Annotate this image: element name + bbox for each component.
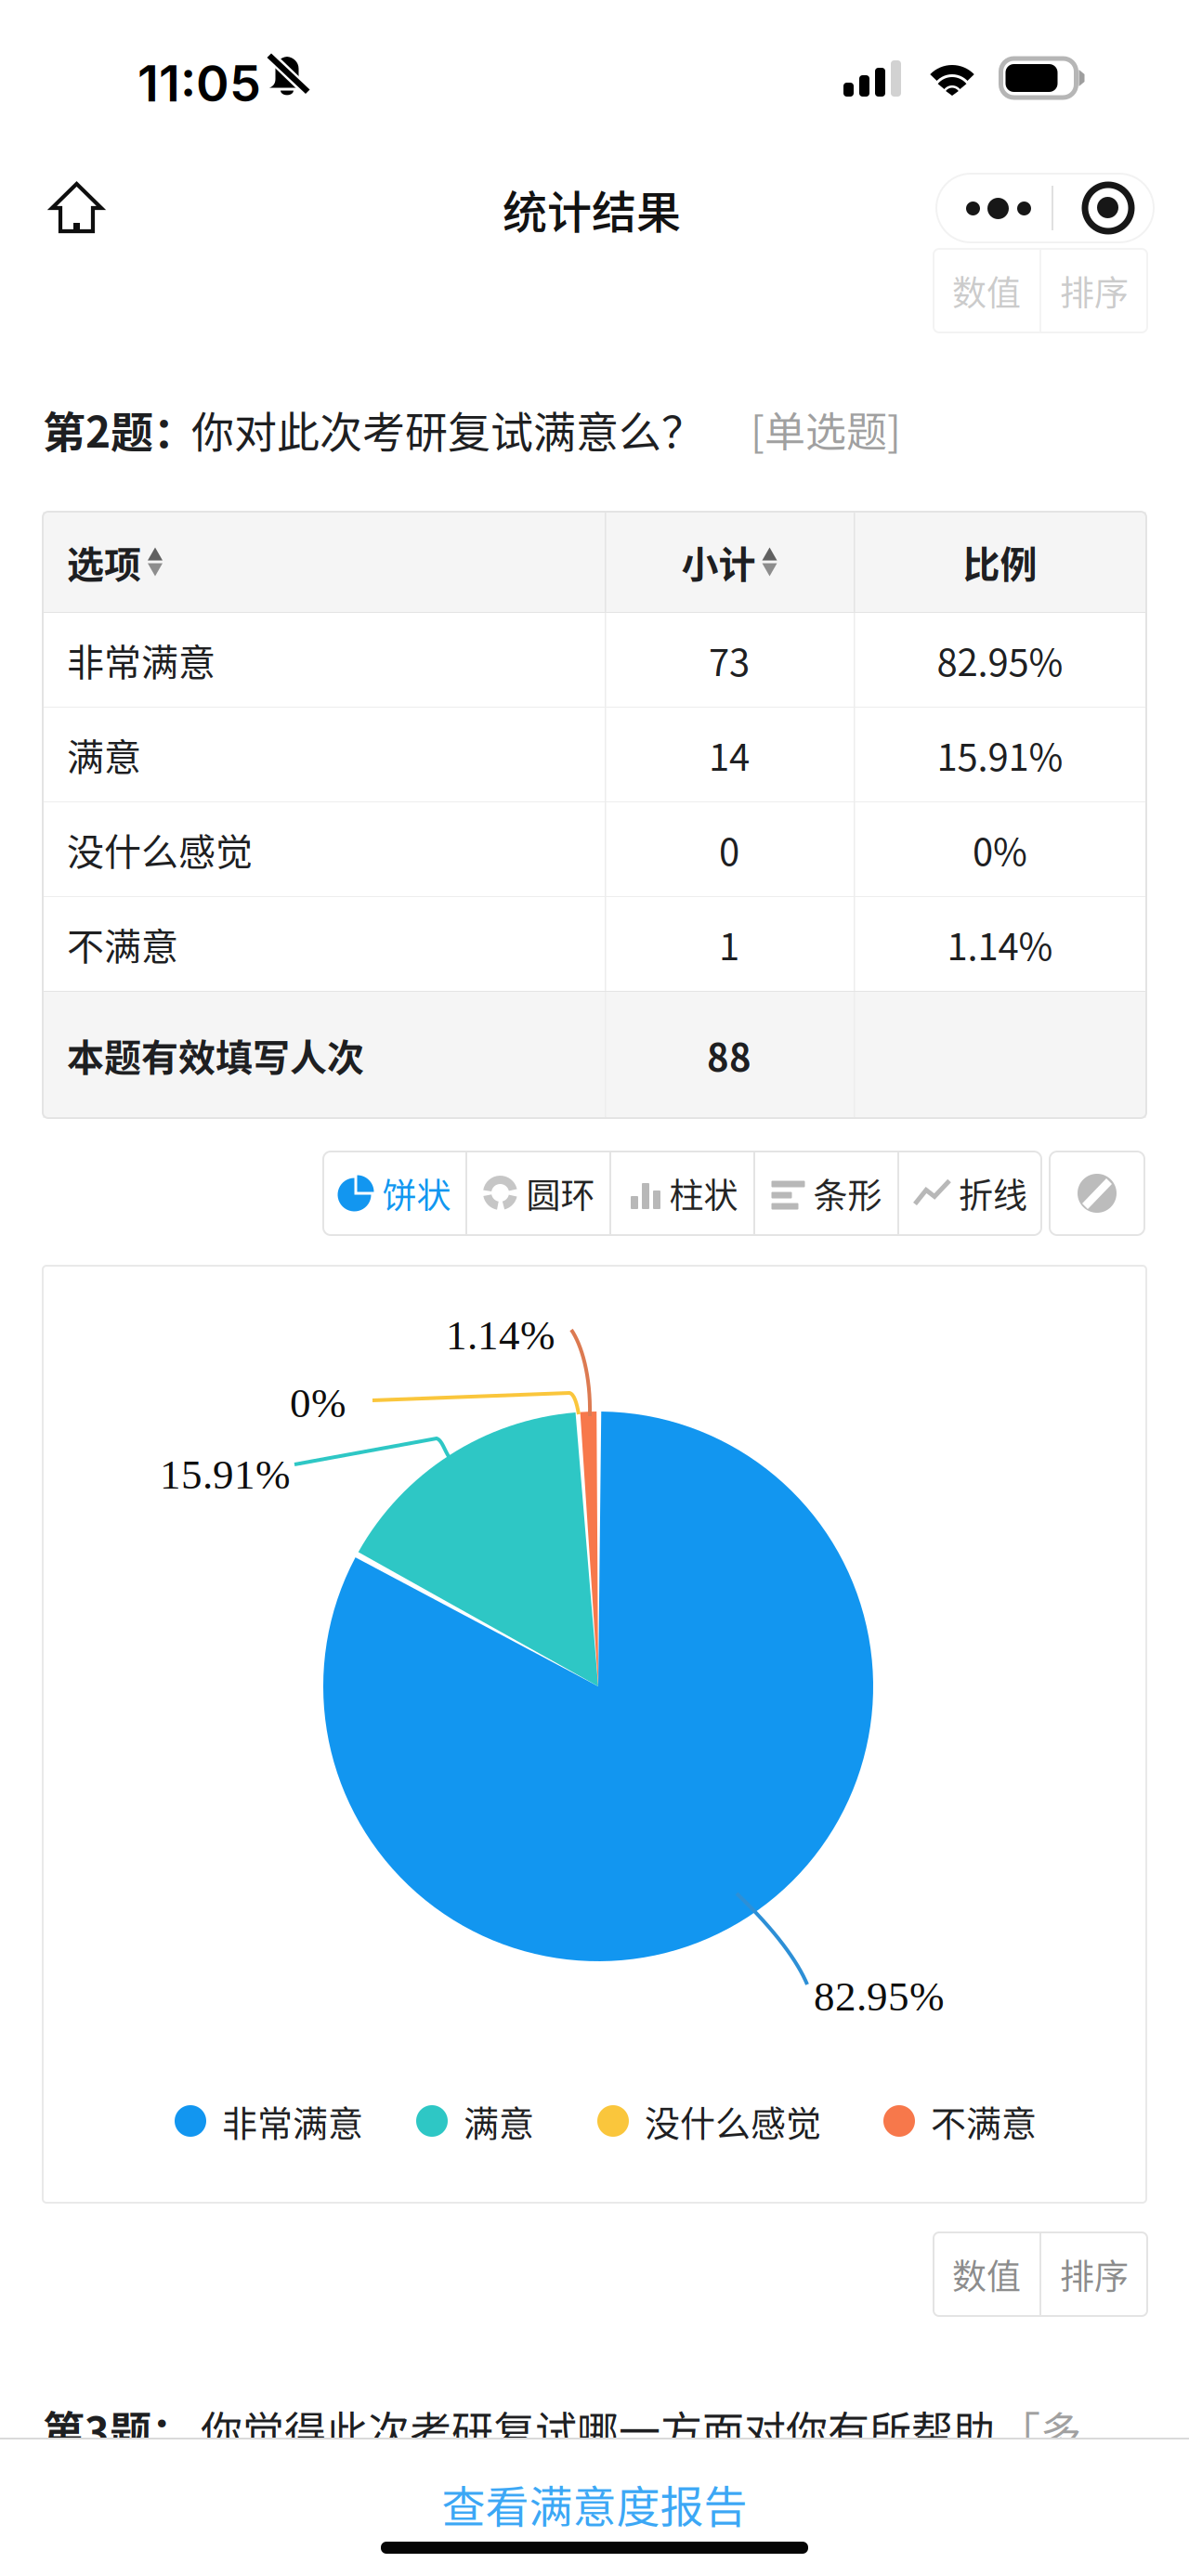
staticText: 满意 <box>464 2095 534 2147</box>
staticText: 1 <box>719 917 739 971</box>
staticText: 数值 <box>952 266 1021 316</box>
staticText: 15.91% <box>937 728 1063 781</box>
staticText: 柱状 <box>669 1168 738 1218</box>
staticText: 你觉得此次考研复试哪一方面对你有所帮助 <box>201 2399 995 2460</box>
staticText: 折线 <box>959 1168 1027 1218</box>
button[interactable]: More chart types (unavailable) <box>1050 1151 1144 1235</box>
staticText: 条形 <box>813 1168 882 1218</box>
button[interactable]: Mini program menu <box>936 174 1154 242</box>
staticText: 88 <box>707 1028 751 1082</box>
staticText: 15.91% <box>160 1451 290 1498</box>
staticText: 11:05 <box>137 53 261 114</box>
staticText: 「多 <box>1000 2400 1081 2459</box>
button[interactable]: 排序 <box>1041 249 1147 332</box>
staticText: 73 <box>709 633 750 687</box>
staticText: 0 <box>719 822 739 876</box>
staticText: 不满意 <box>67 917 178 971</box>
staticText: 没什么感觉 <box>67 822 253 876</box>
staticText: 不满意 <box>931 2095 1037 2147</box>
staticText: 82.95% <box>814 1973 944 2020</box>
staticText: 排序 <box>1060 2249 1129 2299</box>
staticText: 14 <box>709 728 750 781</box>
staticText: 1.14% <box>947 917 1053 971</box>
button[interactable]: 条形 <box>755 1151 897 1235</box>
staticText: 排序 <box>1060 266 1129 316</box>
staticText: 饼状 <box>382 1168 451 1218</box>
button[interactable]: 数值 <box>934 249 1039 332</box>
staticText: 1.14% <box>446 1312 555 1358</box>
staticText: 没什么感觉 <box>645 2095 821 2147</box>
staticText: 查看满意度报告 <box>442 2472 747 2535</box>
button[interactable]: 排序 <box>1041 2232 1147 2316</box>
staticText: 0% <box>290 1380 346 1426</box>
staticText: 第3题： <box>43 2399 193 2460</box>
staticText: 圆环 <box>526 1168 595 1218</box>
staticText: 选项 <box>67 535 141 589</box>
button[interactable]: 查看满意度报告 <box>0 2463 1189 2544</box>
button[interactable]: 数值 <box>934 2232 1039 2316</box>
staticText: 82.95% <box>937 633 1063 687</box>
staticText: 本题有效填写人次 <box>67 1028 364 1082</box>
staticText: 第2题： <box>43 398 196 460</box>
staticText: 0% <box>973 822 1027 876</box>
staticText: 非常满意 <box>67 633 216 687</box>
button[interactable]: 圆环 <box>467 1151 609 1235</box>
staticText: 数值 <box>952 2249 1021 2299</box>
button[interactable]: 折线 <box>899 1151 1041 1235</box>
staticText: 你对此次考研复试满意么？ <box>191 398 704 460</box>
staticText: 统计结果 <box>503 177 681 241</box>
button[interactable]: 饼状 <box>323 1151 465 1235</box>
button[interactable]: Home <box>35 166 119 250</box>
staticText: [单选题] <box>751 399 901 459</box>
staticText: 非常满意 <box>222 2095 363 2147</box>
staticText: 满意 <box>67 728 141 781</box>
button[interactable]: 柱状 <box>611 1151 753 1235</box>
staticText: 比例 <box>963 535 1037 589</box>
staticText: 小计 <box>681 535 756 589</box>
